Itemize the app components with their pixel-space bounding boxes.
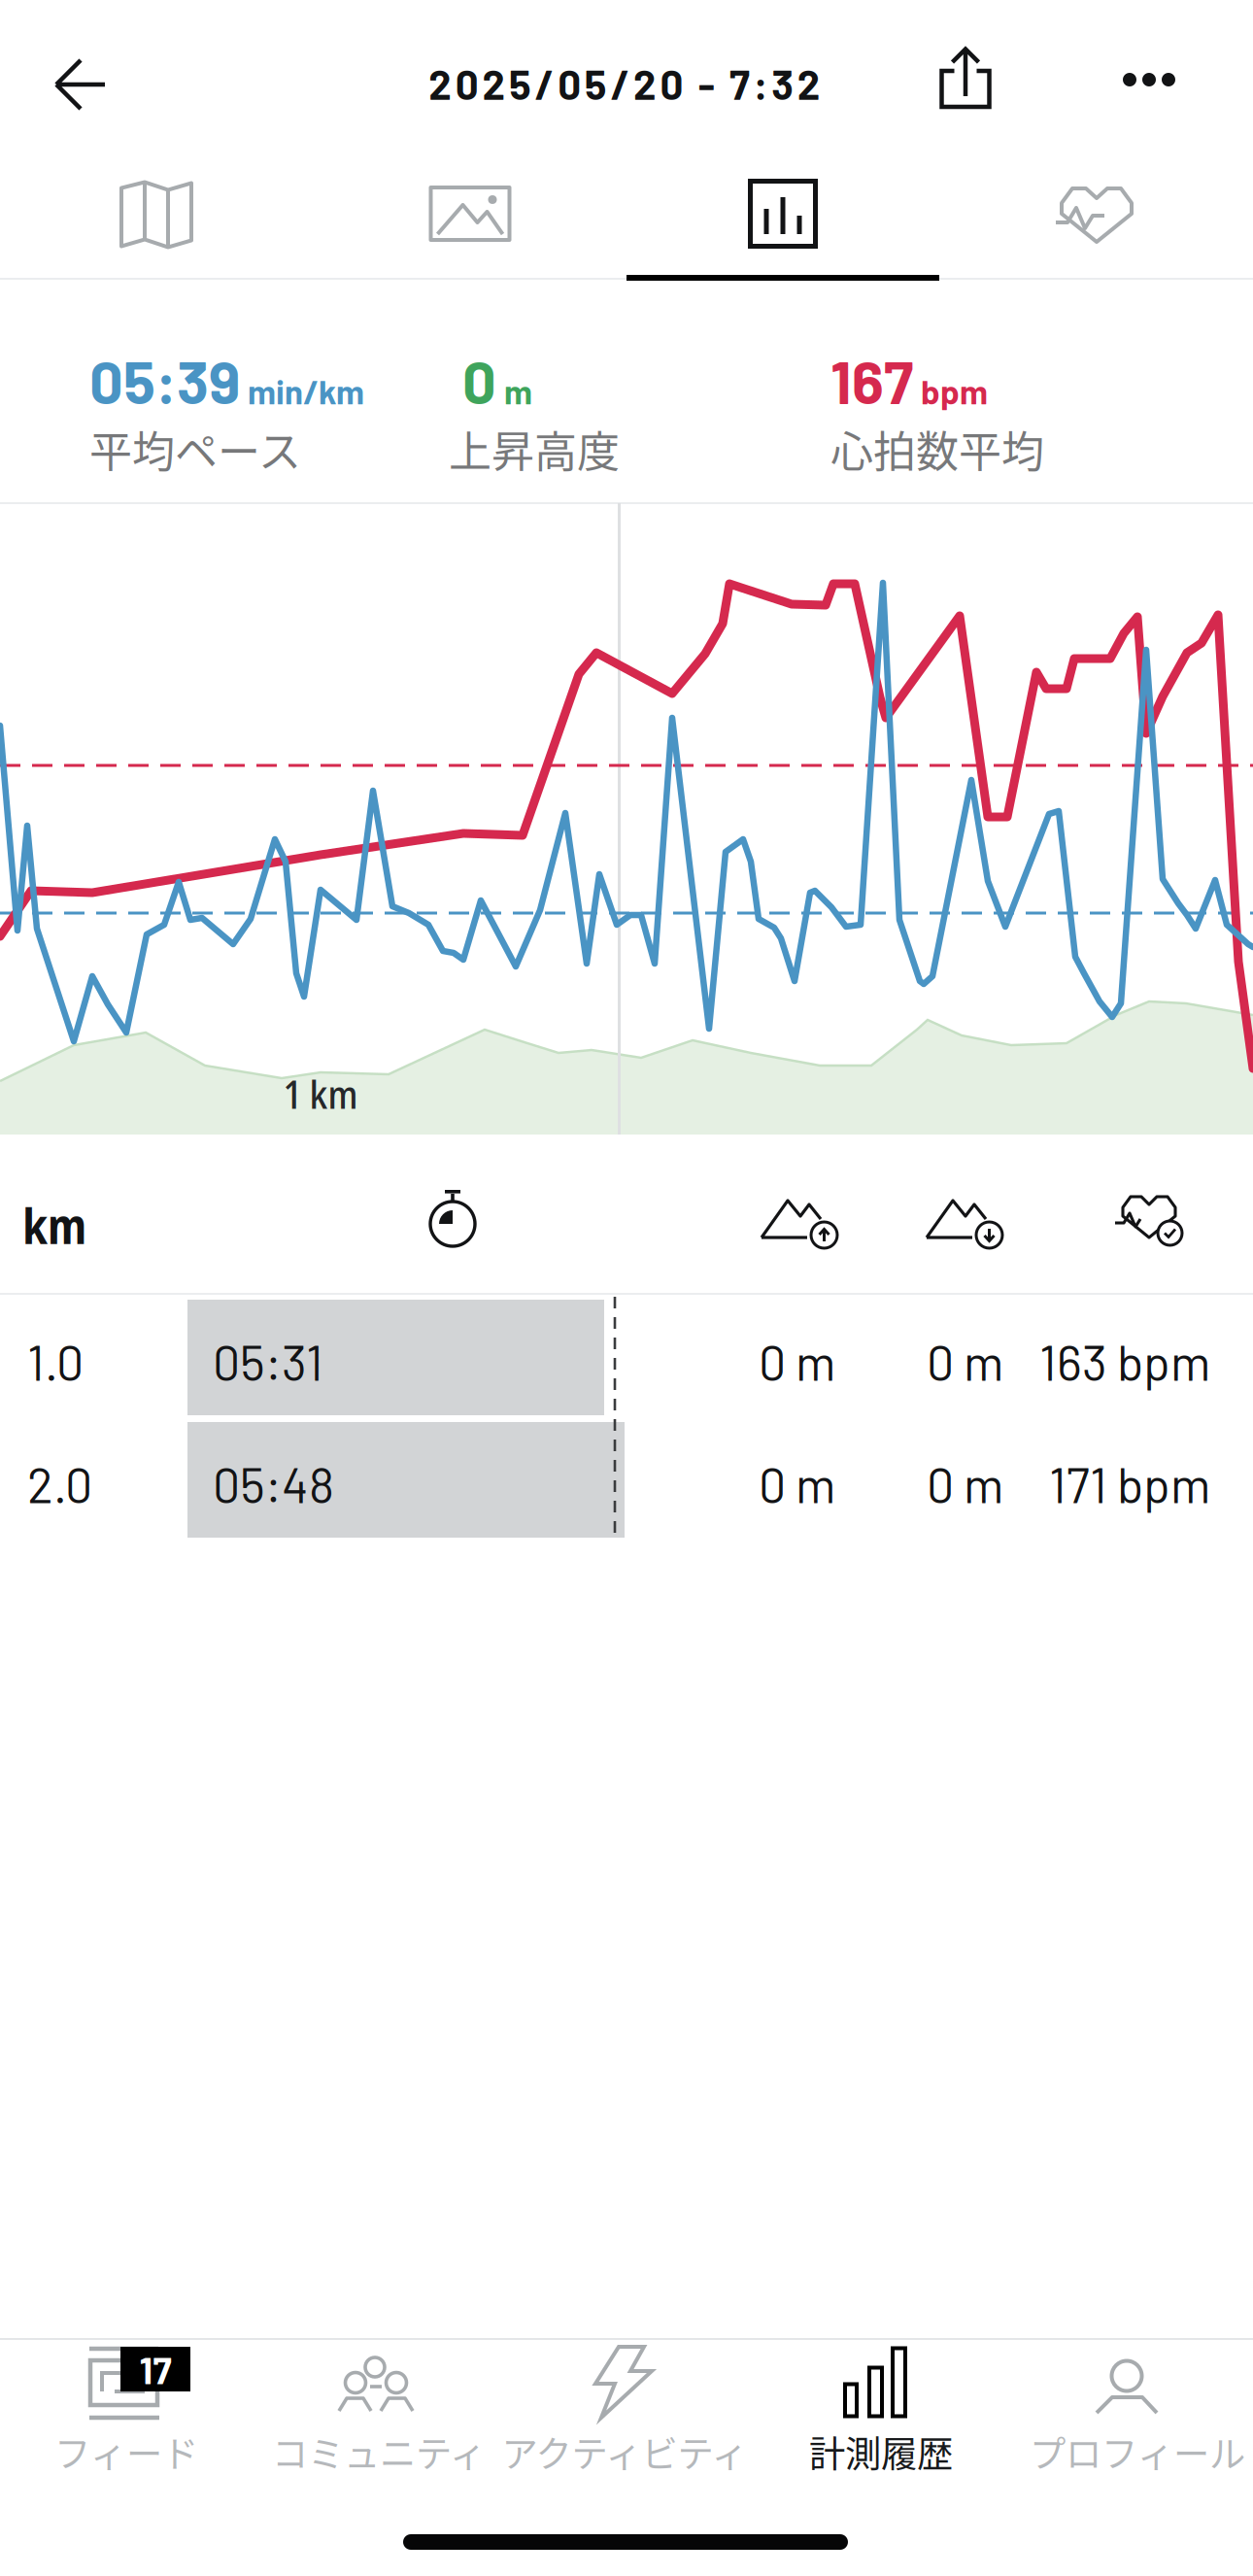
staticText: 1.0: [27, 1332, 84, 1390]
staticText: 0 m: [759, 1332, 835, 1390]
staticText: フィード: [54, 2425, 198, 2478]
button[interactable]: コミュニティ: [257, 2347, 500, 2492]
staticText: bpm: [921, 371, 988, 411]
staticText: アクティビティ: [502, 2425, 747, 2478]
staticText: 1 km: [283, 1067, 358, 1120]
staticText: 0 m: [759, 1455, 835, 1513]
staticText: min/km: [248, 371, 364, 411]
staticText: 05:48: [213, 1455, 334, 1513]
staticText: 2.0: [27, 1455, 92, 1513]
button[interactable]: Back: [44, 48, 118, 121]
staticText: 167: [830, 345, 913, 416]
staticText: 0: [462, 345, 496, 416]
button[interactable]: Charts: [736, 167, 830, 260]
staticText: 171 bpm: [1049, 1455, 1210, 1513]
button[interactable]: More: [1111, 61, 1187, 98]
button[interactable]: Map: [108, 169, 205, 261]
staticText: 2025/05/20 - 7:32: [429, 59, 821, 108]
button[interactable]: アクティビティ: [503, 2347, 746, 2492]
staticText: プロフィール: [1030, 2425, 1245, 2478]
staticText: 計測履歴: [809, 2425, 953, 2478]
button[interactable]: Share: [930, 38, 1001, 118]
staticText: km: [22, 1193, 86, 1258]
staticText: m: [504, 371, 532, 411]
button[interactable]: Heart rate: [1044, 170, 1147, 257]
button[interactable]: フィード: [5, 2347, 248, 2492]
staticText: 163 bpm: [1039, 1332, 1210, 1390]
button[interactable]: 計測履歴: [757, 2347, 999, 2492]
staticText: 17: [139, 2347, 171, 2392]
staticText: 05:31: [213, 1332, 323, 1390]
staticText: 上昇高度: [449, 418, 620, 480]
staticText: 0 m: [927, 1455, 1003, 1513]
staticText: 心拍数平均: [830, 418, 1044, 480]
staticText: 05:39: [89, 345, 240, 416]
staticText: コミュニティ: [272, 2425, 486, 2478]
staticText: 0 m: [927, 1332, 1003, 1390]
button[interactable]: プロフィール: [1008, 2347, 1251, 2492]
staticText: 平均ペース: [89, 418, 301, 480]
button[interactable]: Photos: [417, 174, 523, 254]
